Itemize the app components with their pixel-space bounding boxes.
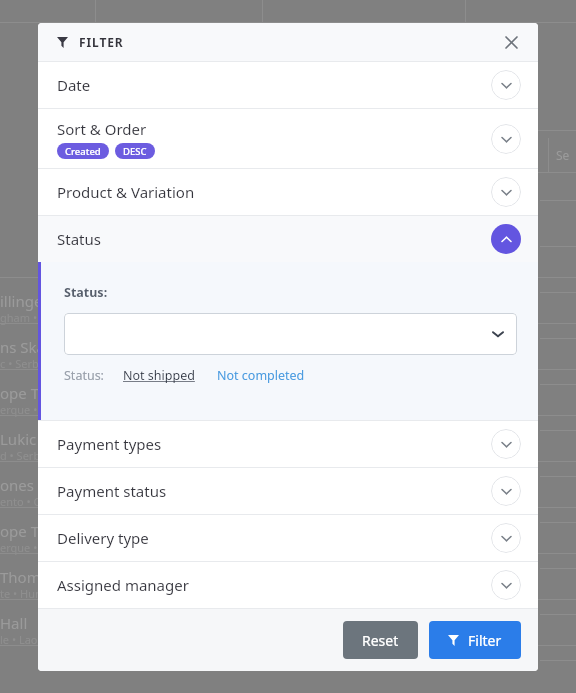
staticText: DESC	[123, 145, 147, 158]
button[interactable]: Status select	[64, 313, 517, 355]
button[interactable]: Expand	[491, 523, 521, 553]
staticText: c • Serb	[0, 356, 39, 371]
button[interactable]: Collapse	[491, 224, 521, 254]
button[interactable]: Expand	[491, 476, 521, 506]
button[interactable]: Expand	[491, 177, 521, 207]
staticText: Lukic	[0, 429, 37, 449]
button[interactable]: Delivery type	[38, 515, 538, 561]
staticText: illinger	[0, 291, 49, 311]
staticText: Created	[65, 145, 101, 158]
staticText: Status:	[64, 367, 104, 384]
button[interactable]: Expand	[491, 124, 521, 154]
staticText: ones	[0, 475, 34, 495]
staticText: d • Serb	[0, 448, 41, 463]
button[interactable]: Assigned manager	[38, 562, 538, 608]
staticText: Se	[556, 147, 570, 163]
staticText: erque •	[0, 402, 38, 417]
staticText: FILTER	[79, 34, 124, 50]
staticText: Filter	[468, 631, 502, 650]
button[interactable]: Filter	[429, 621, 521, 659]
staticText: Status:	[64, 284, 108, 301]
button[interactable]: Reset	[343, 621, 418, 659]
button[interactable]: Expand	[491, 570, 521, 600]
staticText: Payment types	[57, 434, 162, 454]
staticText: Sort & Order	[57, 119, 147, 139]
staticText: Assigned manager	[57, 575, 189, 595]
button[interactable]: Not completed	[217, 367, 305, 384]
button[interactable]: Status	[38, 216, 538, 262]
staticText: Status	[57, 229, 101, 249]
staticText: Payment status	[57, 481, 167, 501]
button[interactable]: Payment types	[38, 421, 538, 467]
button[interactable]: Sort & Order	[38, 109, 538, 168]
staticText: ope Th	[0, 521, 49, 541]
staticText: Not shipped	[123, 367, 195, 384]
staticText: ento • C	[0, 494, 41, 509]
staticText: Thom	[0, 567, 41, 587]
staticText: ope Th	[0, 383, 49, 403]
staticText: ns Ska	[0, 337, 46, 357]
staticText: erque •	[0, 540, 38, 555]
staticText: Hall	[0, 613, 28, 633]
staticText: le • Laos	[0, 632, 43, 647]
button[interactable]: Not shipped	[123, 367, 195, 384]
staticText: Product & Variation	[57, 182, 195, 202]
button[interactable]: Product & Variation	[38, 169, 538, 215]
staticText: Not completed	[217, 367, 305, 384]
button[interactable]: Date	[38, 62, 538, 108]
button[interactable]: Expand	[491, 429, 521, 459]
button[interactable]: Payment status	[38, 468, 538, 514]
staticText: Reset	[362, 631, 399, 650]
staticText: Date	[57, 75, 91, 95]
staticText: te • Hun	[0, 586, 42, 601]
staticText: Delivery type	[57, 528, 149, 548]
button[interactable]: Close	[496, 27, 526, 57]
staticText: gham • C	[0, 310, 47, 325]
button[interactable]: Expand	[491, 70, 521, 100]
